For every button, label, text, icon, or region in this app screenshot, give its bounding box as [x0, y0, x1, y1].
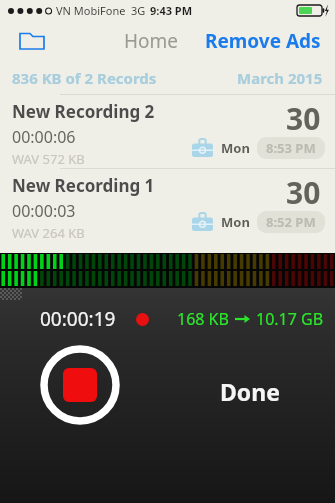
staticText: 00:00:06 — [12, 126, 76, 148]
button[interactable]: Stop recording — [40, 345, 120, 425]
button[interactable]: Home — [118, 22, 185, 60]
button[interactable]: New Recording 2 — [0, 95, 335, 168]
staticText: New Recording 2 — [12, 100, 155, 123]
button[interactable]: Done — [210, 368, 290, 415]
staticText: VN MobiFone — [56, 3, 126, 18]
staticText: March 2015 — [237, 68, 323, 88]
staticText: 8:52 PM — [266, 213, 316, 231]
staticText: Done — [220, 376, 280, 407]
staticText: 168 KB — [177, 308, 229, 330]
staticText: 00:00:19 — [40, 306, 116, 332]
staticText: 9:43 PM — [150, 3, 193, 18]
staticText: Remove Ads — [205, 28, 321, 54]
staticText: 30 — [286, 172, 321, 213]
staticText: 10.17 GB — [256, 308, 324, 330]
button[interactable]: Folders — [12, 21, 52, 61]
button[interactable]: New Recording 1 — [0, 169, 335, 242]
staticText: Home — [124, 28, 179, 54]
staticText: WAV 264 KB — [12, 224, 85, 242]
staticText: WAV 572 KB — [12, 150, 85, 168]
button[interactable]: Remove Ads — [203, 22, 323, 60]
staticText: New Recording 1 — [12, 174, 155, 197]
staticText: Mon — [221, 139, 250, 157]
staticText: 30 — [286, 98, 321, 139]
staticText: Mon — [221, 213, 250, 231]
staticText: 3G — [131, 3, 146, 18]
staticText: 8:53 PM — [266, 139, 316, 157]
staticText: 836 KB of 2 Records — [12, 68, 157, 88]
staticText: 00:00:03 — [12, 200, 76, 222]
